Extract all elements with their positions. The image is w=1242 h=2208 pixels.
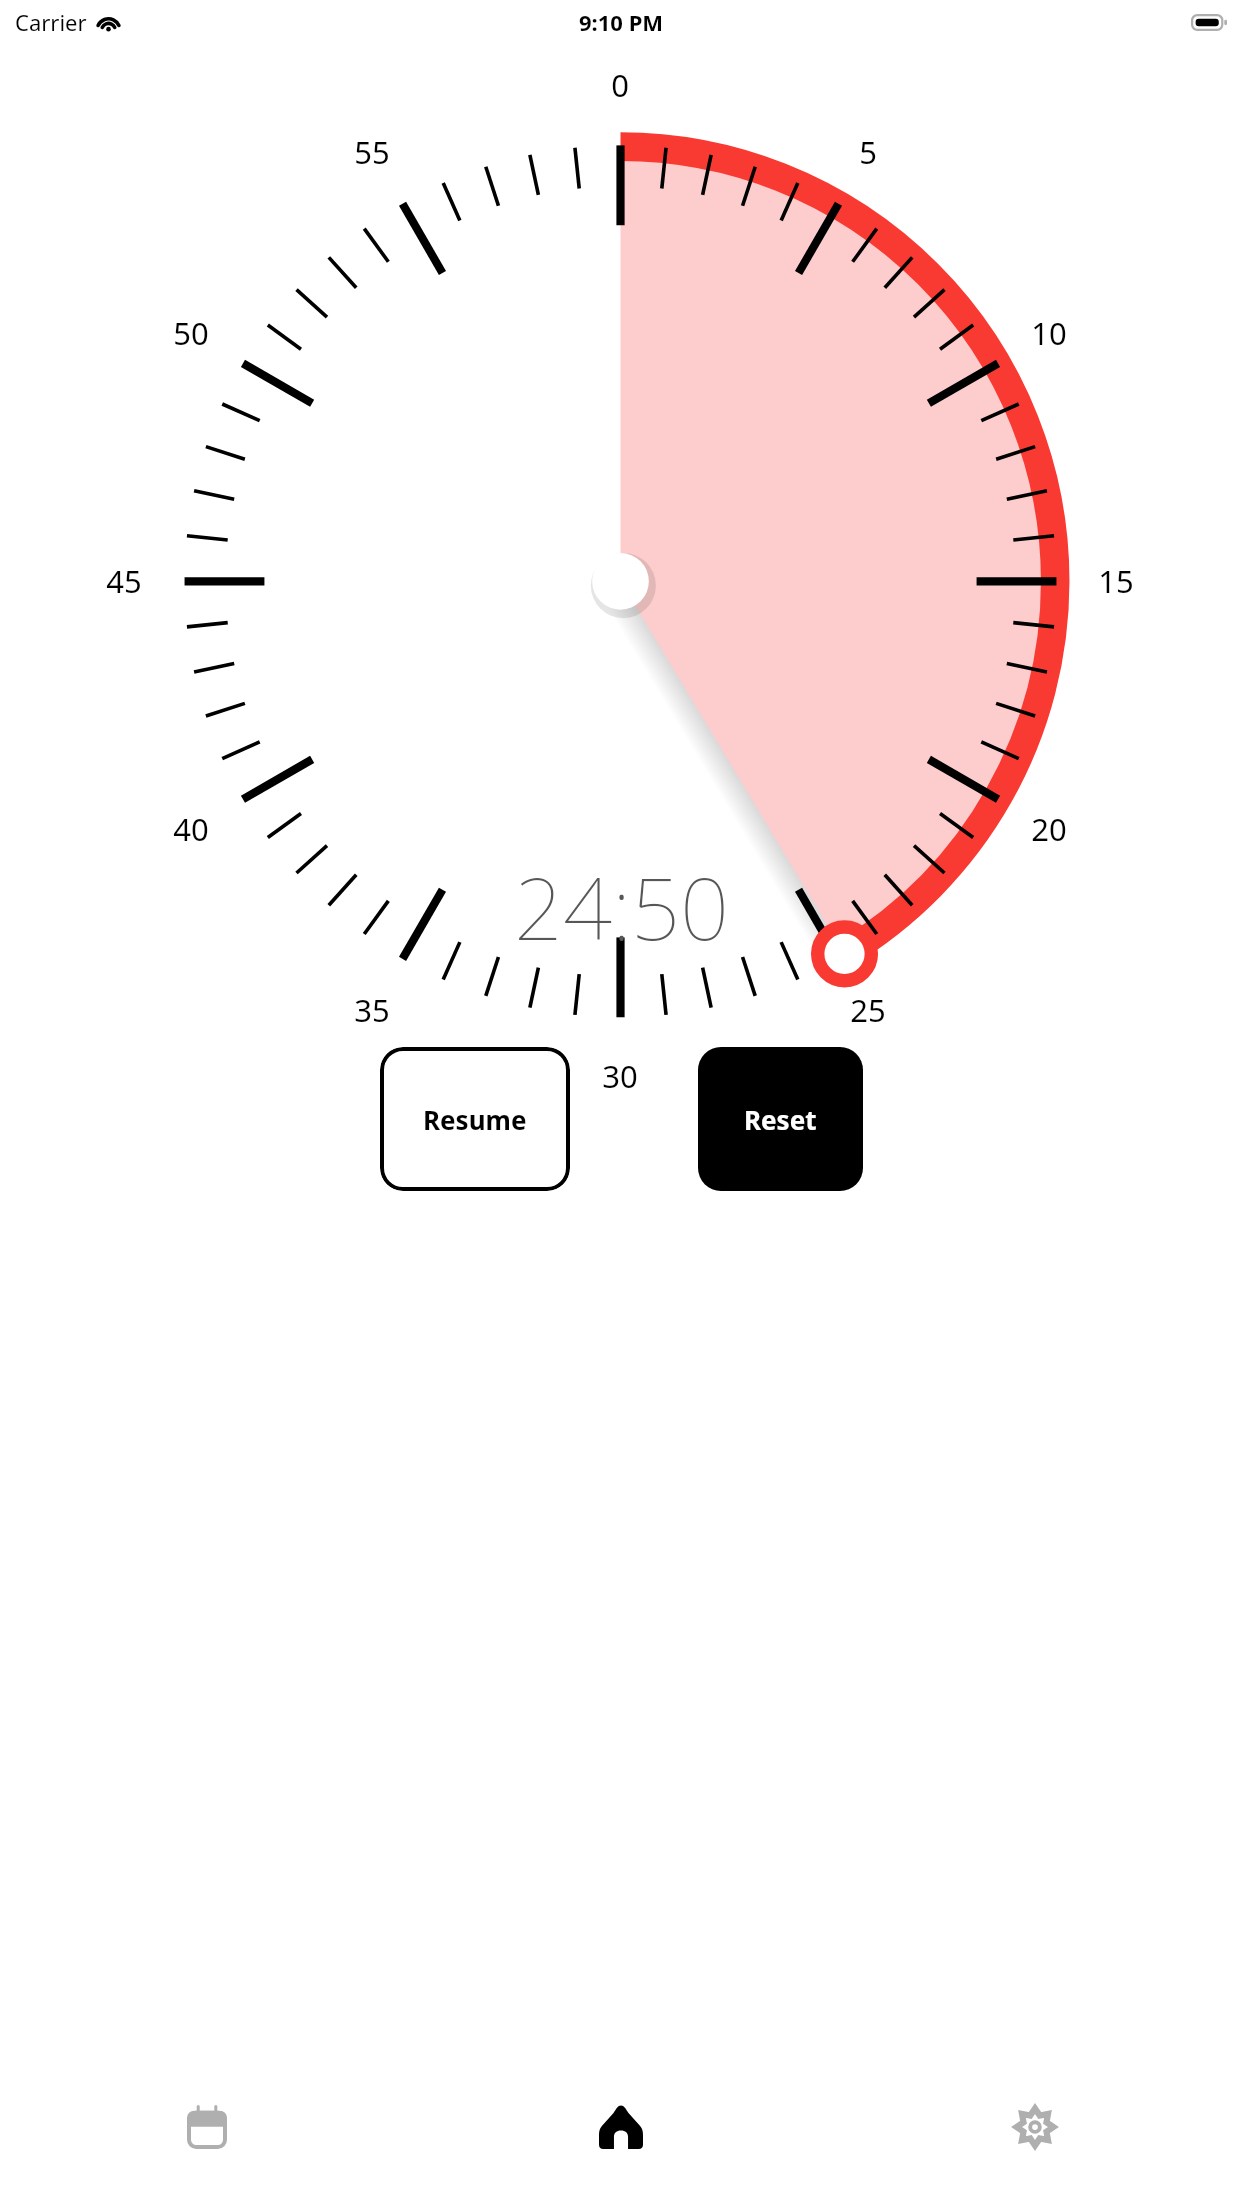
staticText: 9:10 PM [579,7,664,37]
staticText: Carrier [15,7,87,37]
staticText: 45 [106,560,142,602]
button[interactable]: Resume [380,1047,570,1191]
button[interactable]: Calendar [0,2086,414,2168]
staticText: 25 [850,989,886,1031]
staticText: 30 [602,1055,638,1097]
staticText: Reset [744,1102,817,1137]
staticText: 10 [1031,312,1067,354]
button[interactable]: Reset [698,1047,863,1191]
staticText: 20 [1031,808,1067,850]
staticText: 5 [859,131,877,173]
button[interactable]: Home [414,2086,828,2168]
staticText: 15 [1098,560,1134,602]
staticText: 40 [173,808,209,850]
staticText: 55 [354,131,390,173]
button[interactable]: Settings [828,2086,1242,2168]
staticText: Resume [423,1102,527,1137]
staticText: 50 [173,312,209,354]
staticText: 24:50 [514,848,729,965]
staticText: 35 [354,989,390,1031]
staticText: 0 [611,64,629,106]
